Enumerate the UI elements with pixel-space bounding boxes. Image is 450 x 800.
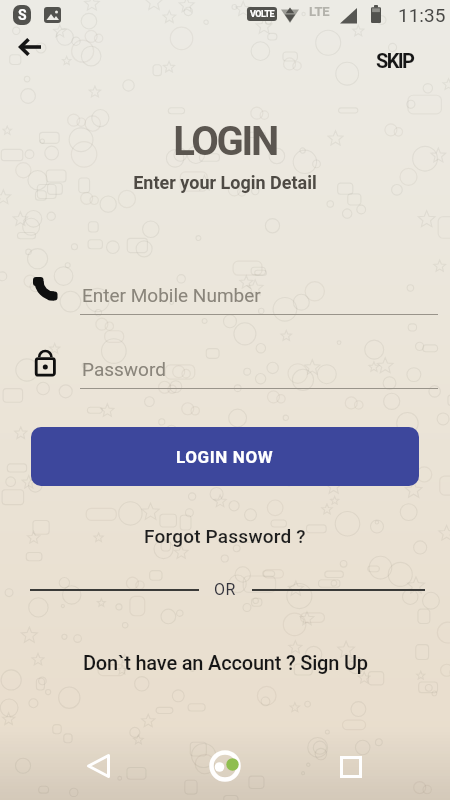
button[interactable]: Forgot Password ? [125,518,325,554]
staticText: Don`t have an Account ? Sign Up [83,651,368,674]
staticText: OR [0,580,450,599]
button[interactable]: Password [80,352,438,389]
button[interactable]: Don`t have an Account ? Sign Up [60,644,390,680]
staticText: S [18,7,27,23]
button[interactable] [12,33,50,61]
staticText: LOGIN [0,118,450,165]
button[interactable] [204,745,246,787]
staticText: VOLTE [250,9,275,20]
button[interactable]: LOGIN NOW [31,427,419,486]
staticText: Forgot Password ? [144,525,306,547]
button[interactable]: SKIP [363,44,427,76]
staticText: Password [82,358,166,380]
staticText: Enter your Login Detail [0,172,450,193]
button[interactable]: Enter Mobile Number [80,278,438,315]
staticText: LOGIN NOW [176,447,274,467]
staticText: SKIP [376,49,414,72]
button[interactable] [329,746,371,786]
staticText: LTE [309,4,330,19]
staticText: 11:35 [398,4,446,26]
button[interactable] [78,746,120,786]
staticText: Enter Mobile Number [82,284,261,306]
